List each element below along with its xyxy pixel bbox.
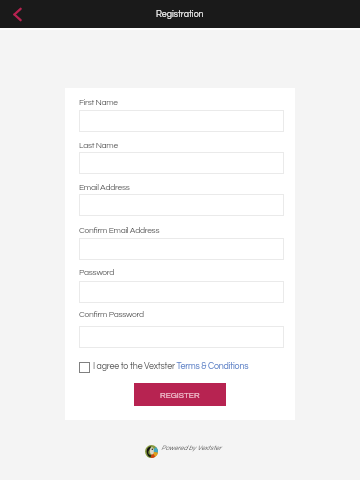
staticText: Email Address	[79, 183, 130, 192]
staticText: First Name	[79, 98, 118, 107]
staticText: Powered by Vextster	[161, 445, 221, 452]
button[interactable]	[79, 152, 284, 174]
staticText: Last Name	[79, 141, 118, 150]
button[interactable]	[79, 326, 284, 348]
staticText: REGISTER	[160, 391, 200, 400]
button[interactable]	[79, 281, 284, 303]
button[interactable]: REGISTER	[134, 383, 226, 406]
button[interactable]	[79, 238, 284, 260]
button[interactable]	[79, 194, 284, 216]
button[interactable]: I agree to the Vextster Terms & Conditio…	[79, 362, 249, 373]
staticText: Confirm Password	[79, 310, 144, 319]
staticText: Registration	[156, 10, 204, 19]
button[interactable]: Back	[3, 0, 31, 28]
button[interactable]	[79, 110, 284, 132]
staticText: Confirm Email Address	[79, 226, 160, 235]
staticText: I agree to the Vextster Terms & Conditio…	[93, 362, 249, 371]
staticText: Password	[79, 268, 115, 277]
